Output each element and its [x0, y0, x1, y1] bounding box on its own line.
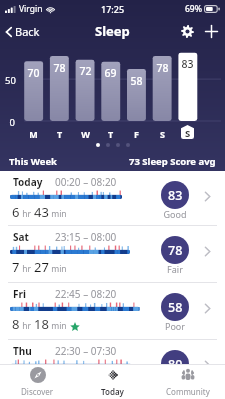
- staticText: min: [49, 263, 67, 275]
- staticText: Discover: [21, 386, 54, 397]
- button[interactable]: Thu: [0, 340, 225, 397]
- button[interactable]: This Week: [0, 152, 225, 171]
- staticText: 8: [12, 315, 20, 333]
- staticText: hr: [20, 320, 34, 332]
- staticText: 83: [168, 187, 183, 204]
- staticText: 7: [12, 258, 20, 276]
- staticText: Virgin: [19, 3, 43, 15]
- staticText: 58: [168, 299, 183, 316]
- staticText: 0: [34, 372, 42, 390]
- staticText: hr: [20, 263, 34, 275]
- staticText: 27: [34, 258, 49, 276]
- staticText: S: [185, 127, 191, 140]
- staticText: min: [49, 320, 67, 332]
- staticText: T: [50, 128, 69, 140]
- staticText: 50: [5, 74, 16, 87]
- staticText: 0: [5, 116, 15, 129]
- staticText: Today: [13, 175, 43, 189]
- staticText: hr: [20, 377, 34, 389]
- button[interactable]: Add sleep log: [199, 19, 223, 43]
- staticText: T: [101, 128, 120, 140]
- staticText: S: [153, 128, 172, 140]
- staticText: 17:25: [101, 3, 125, 15]
- staticText: Poor: [160, 320, 190, 332]
- staticText: 83: [178, 57, 197, 71]
- button[interactable]: Discover: [0, 365, 75, 399]
- staticText: 78: [153, 61, 172, 75]
- staticText: 43: [34, 203, 49, 221]
- button[interactable]: Fri: [0, 283, 225, 340]
- staticText: 72: [76, 64, 95, 78]
- staticText: Good: [160, 377, 190, 389]
- staticText: Fri: [13, 287, 26, 301]
- staticText: 22:30 – 07:30: [55, 344, 117, 358]
- staticText: 78: [168, 242, 183, 259]
- button[interactable]: Settings: [175, 19, 199, 43]
- staticText: 78: [50, 61, 69, 75]
- staticText: Today: [101, 386, 124, 397]
- staticText: Thu: [13, 344, 32, 358]
- staticText: Sat: [13, 230, 29, 244]
- button[interactable]: Community: [150, 365, 225, 399]
- staticText: F: [127, 128, 146, 140]
- staticText: Good: [160, 208, 190, 220]
- staticText: 18: [34, 315, 49, 333]
- button[interactable]: Today: [75, 365, 150, 399]
- staticText: Community: [166, 386, 210, 397]
- staticText: 22:45 – 08:20: [55, 287, 117, 301]
- staticText: M: [24, 128, 43, 140]
- staticText: min: [49, 208, 67, 220]
- staticText: 6: [12, 203, 20, 221]
- staticText: 69%: [185, 3, 202, 15]
- staticText: 69: [101, 66, 120, 80]
- staticText: 23:15 – 08:00: [55, 230, 117, 244]
- button[interactable]: Today: [0, 171, 225, 226]
- staticText: 73 Sleep Score avg: [129, 155, 216, 168]
- staticText: 58: [127, 74, 146, 88]
- staticText: Sleep: [95, 22, 130, 40]
- button[interactable]: Sat: [0, 226, 225, 283]
- staticText: This Week: [9, 155, 57, 168]
- staticText: 70: [24, 66, 43, 80]
- staticText: hr: [20, 208, 34, 220]
- button[interactable]: Back: [0, 20, 48, 43]
- staticText: Fair: [160, 263, 190, 275]
- staticText: W: [76, 128, 95, 140]
- staticText: 00:20 – 08:20: [55, 175, 117, 189]
- staticText: 80: [168, 356, 183, 373]
- staticText: Back: [15, 24, 40, 39]
- staticText: min: [42, 377, 60, 389]
